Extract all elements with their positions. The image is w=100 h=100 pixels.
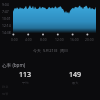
staticText: 今天 <box>33 48 41 53</box>
staticText: 5月21日 <box>43 48 58 53</box>
staticText: 12:14 <box>2 23 11 28</box>
staticText: 12:00 <box>55 37 64 42</box>
staticText: 16:00 <box>70 37 79 42</box>
staticText: 20:00 <box>85 37 94 42</box>
staticText: 预警 <box>2 92 9 96</box>
staticText: 113 <box>19 70 32 80</box>
staticText: 7:47 <box>2 9 9 14</box>
staticText: 静息 <box>2 85 9 89</box>
staticText: 9:04 <box>2 2 9 7</box>
button[interactable]: 今天 <box>30 47 71 54</box>
staticText: 心率 (bpm) <box>2 62 26 68</box>
staticText: 4:00 <box>25 37 32 42</box>
staticText: 10:01 <box>2 16 11 21</box>
staticText: 平均 <box>22 81 29 85</box>
staticText: 8:00 <box>40 37 47 42</box>
staticText: 最大 <box>72 81 79 85</box>
staticText: 14:38 <box>2 30 11 35</box>
staticText: 周日 <box>60 48 68 53</box>
staticText: 149 <box>69 70 82 80</box>
staticText: 0:00 <box>11 37 18 42</box>
